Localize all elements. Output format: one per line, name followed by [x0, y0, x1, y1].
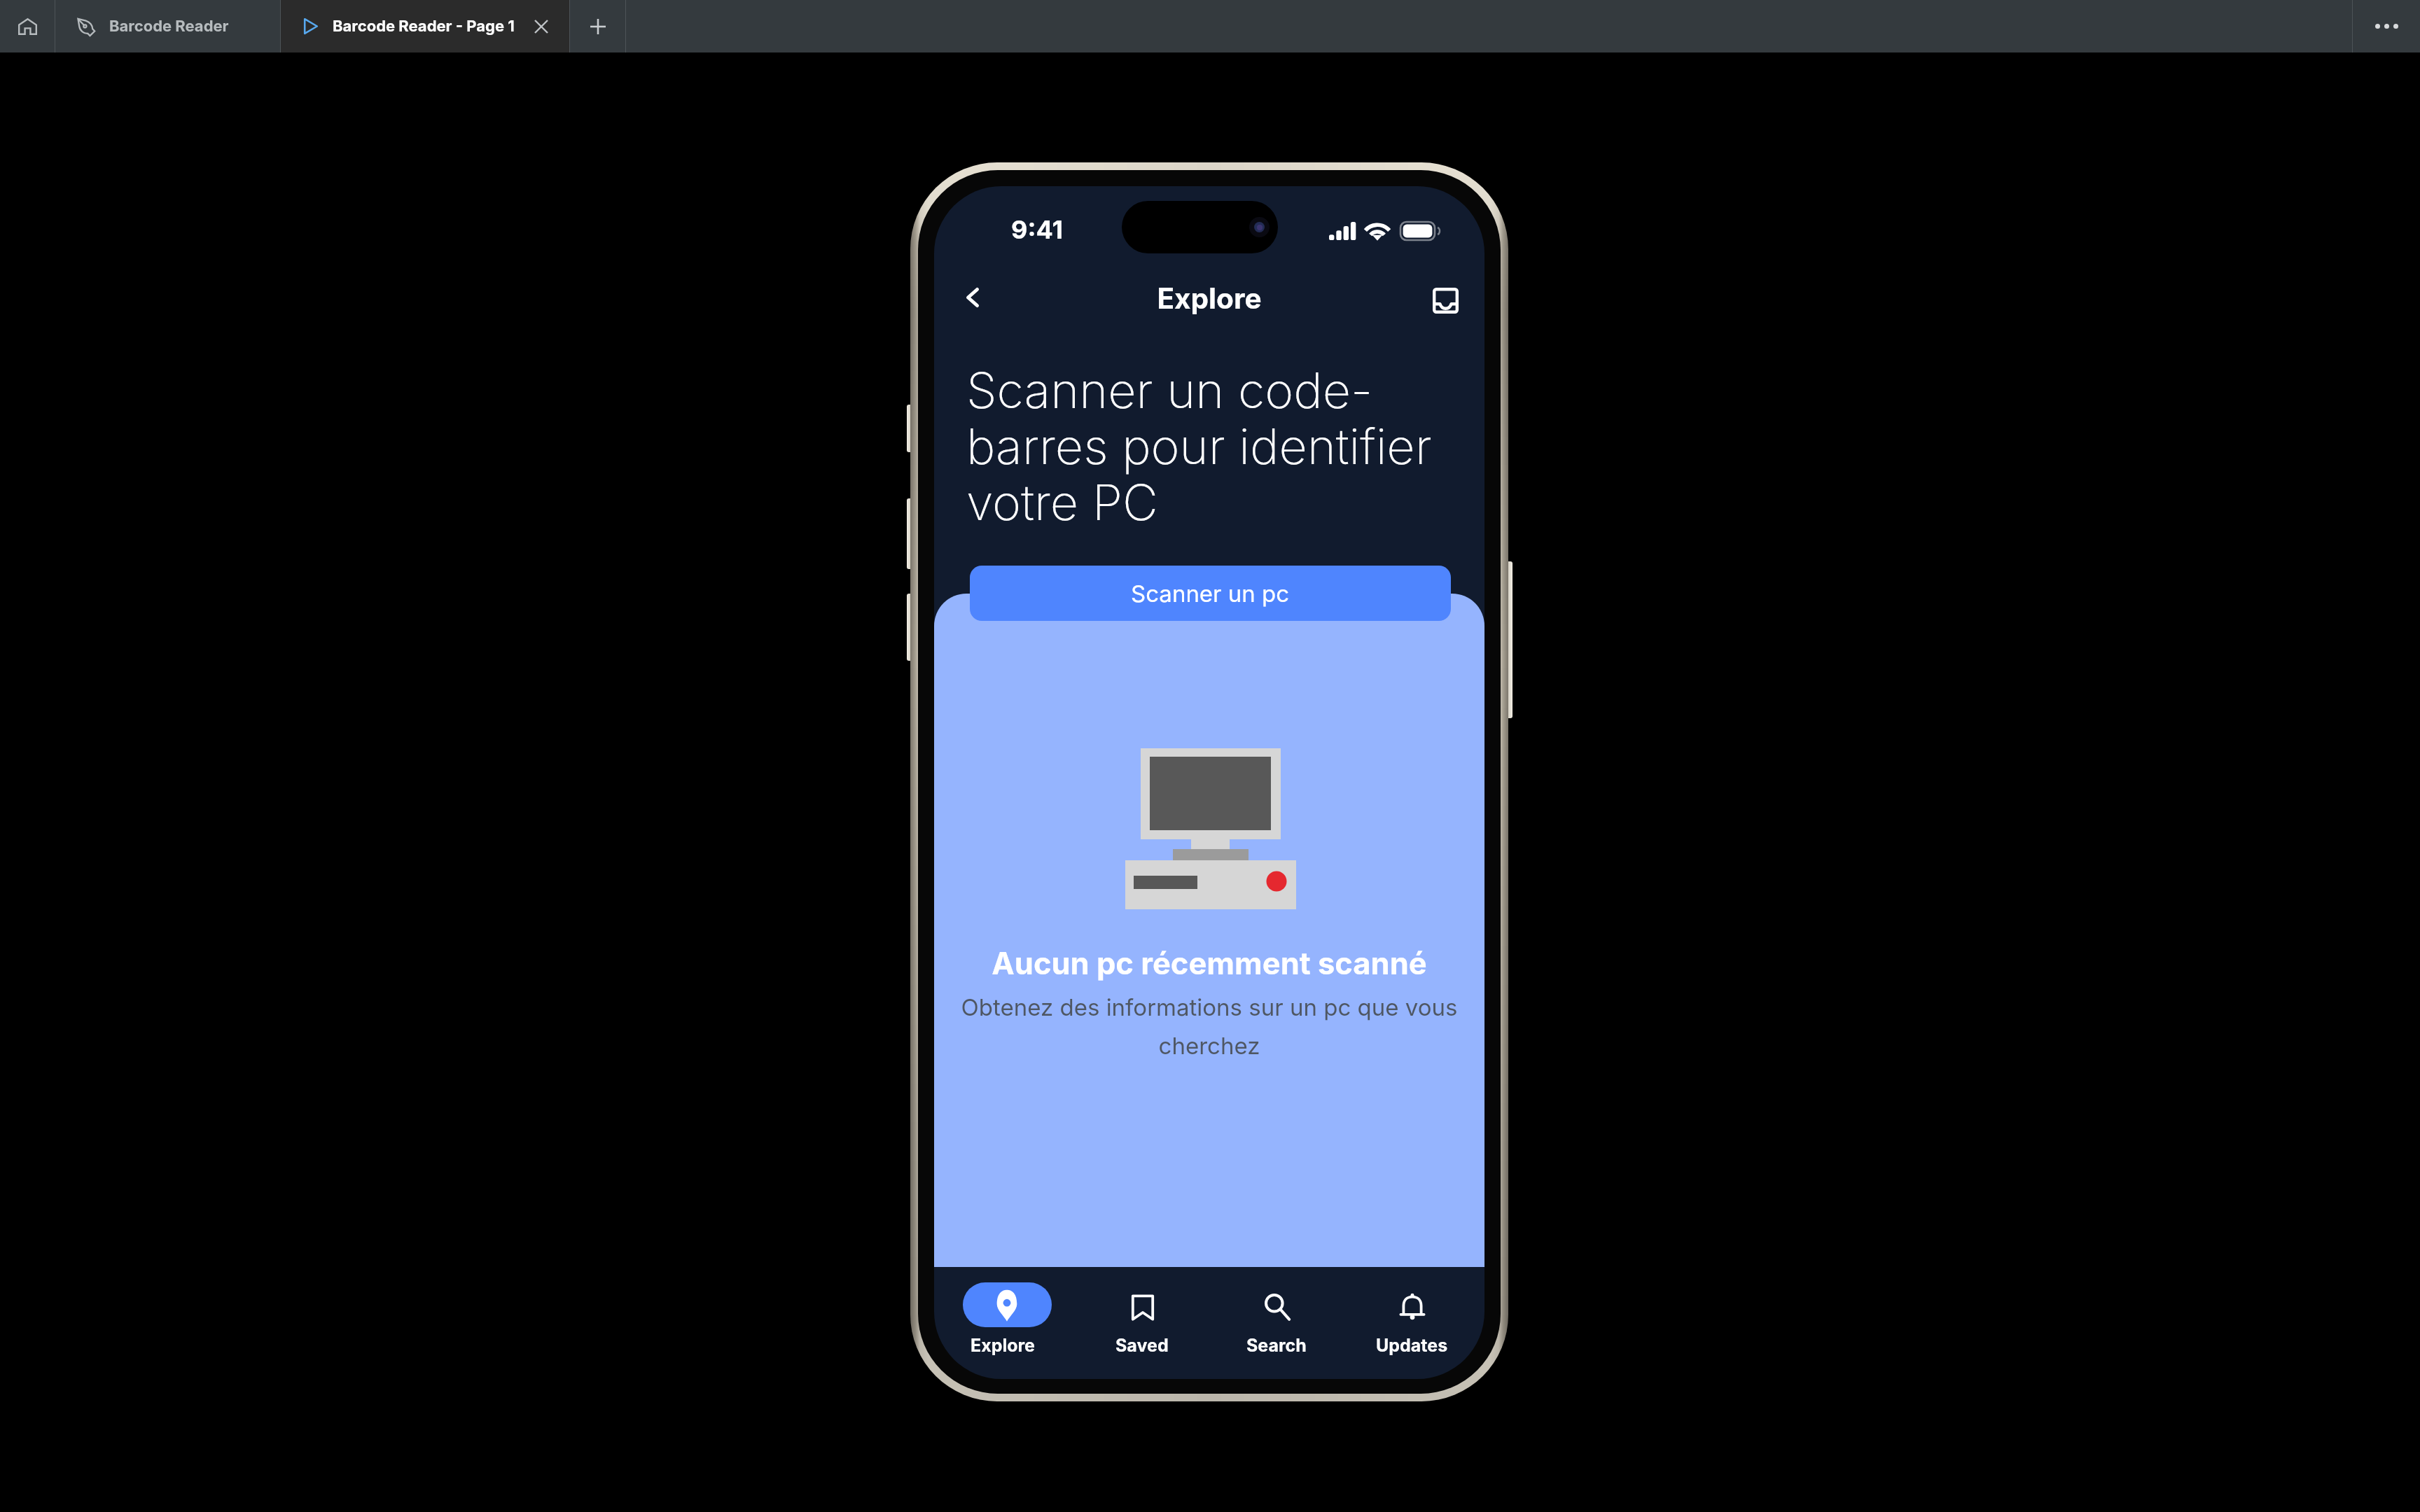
- button[interactable]: Back: [952, 276, 994, 318]
- staticText: Aucun pc récemment scanné: [934, 945, 1484, 982]
- button[interactable]: Barcode Reader: [55, 0, 280, 52]
- button[interactable]: More options: [2353, 0, 2420, 52]
- button[interactable]: Saved: [1086, 1273, 1198, 1371]
- staticText: 9:41: [1011, 214, 1063, 245]
- button[interactable]: Updates: [1356, 1273, 1468, 1371]
- staticText: Explore: [971, 1335, 1036, 1356]
- staticText: Barcode Reader: [109, 17, 229, 36]
- staticText: Search: [1246, 1335, 1307, 1356]
- button[interactable]: Inbox: [1424, 279, 1466, 321]
- staticText: Saved: [1115, 1335, 1169, 1356]
- button[interactable]: Home: [0, 0, 55, 52]
- staticText: Updates: [1376, 1335, 1448, 1356]
- button[interactable]: Barcode Reader - Page 1: [281, 0, 569, 52]
- staticText: Barcode Reader - Page 1: [333, 17, 515, 36]
- button[interactable]: Search: [1221, 1273, 1333, 1371]
- staticText: Explore: [934, 281, 1484, 316]
- staticText: Scanner un pc: [1131, 580, 1290, 608]
- button[interactable]: New tab: [570, 0, 625, 52]
- button[interactable]: Explore: [947, 1273, 1059, 1371]
- button[interactable]: Close tab: [527, 0, 556, 52]
- staticText: Obtenez des informations sur un pc que v…: [943, 993, 1475, 1060]
- staticText: Scanner un code-barres pour identifier v…: [966, 360, 1463, 532]
- button[interactable]: Scanner un pc: [970, 566, 1451, 621]
